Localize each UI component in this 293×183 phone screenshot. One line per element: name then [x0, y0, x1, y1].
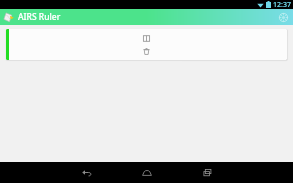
button[interactable]: Settings	[277, 11, 289, 23]
button[interactable]: Back	[70, 162, 104, 183]
button[interactable]: Pause	[141, 33, 152, 44]
button[interactable]: Delete	[141, 46, 152, 57]
button[interactable]: Happy	[6, 29, 287, 60]
staticText: AIRS Ruler	[18, 11, 61, 23]
staticText: 12:37	[273, 0, 291, 9]
button[interactable]: Recent apps	[190, 162, 224, 183]
button[interactable]: Home	[130, 162, 164, 183]
